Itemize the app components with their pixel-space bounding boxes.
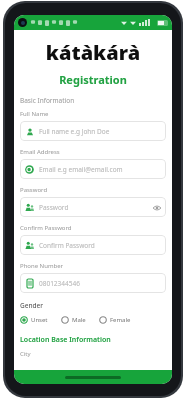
staticText: Confirm Password bbox=[39, 241, 161, 250]
staticText: City bbox=[20, 350, 31, 358]
staticText: Full name e.g John Doe bbox=[39, 127, 161, 136]
staticText: Password bbox=[39, 203, 152, 212]
staticText: Registration bbox=[20, 72, 166, 87]
staticText: 08012344546 bbox=[39, 279, 161, 288]
staticText: Unset bbox=[31, 316, 48, 324]
staticText: Email e.g email@email.com bbox=[39, 165, 161, 174]
button[interactable]: Female bbox=[99, 316, 131, 324]
staticText: Female bbox=[110, 316, 131, 324]
staticText: Male bbox=[72, 316, 86, 324]
staticText: Basic Information bbox=[20, 96, 75, 105]
staticText: Confirm Password bbox=[20, 224, 72, 232]
button[interactable]: Password bbox=[20, 197, 166, 217]
staticText: kátàkárà bbox=[20, 39, 166, 66]
button[interactable]: Full name e.g John Doe bbox=[20, 121, 166, 141]
staticText: Gender bbox=[20, 301, 44, 310]
button[interactable]: Confirm Password bbox=[20, 235, 166, 255]
staticText: Full Name bbox=[20, 110, 49, 118]
button[interactable]: Unset bbox=[20, 316, 48, 324]
button[interactable]: Email e.g email@email.com bbox=[20, 159, 166, 179]
button[interactable]: 08012344546 bbox=[20, 273, 166, 293]
button[interactable]: Location Base Information bbox=[20, 335, 111, 345]
button[interactable]: Show password bbox=[152, 203, 161, 212]
button[interactable]: Male bbox=[61, 316, 86, 324]
staticText: Phone Number bbox=[20, 262, 64, 270]
staticText: Email Address bbox=[20, 148, 60, 156]
staticText: Password bbox=[20, 186, 48, 194]
